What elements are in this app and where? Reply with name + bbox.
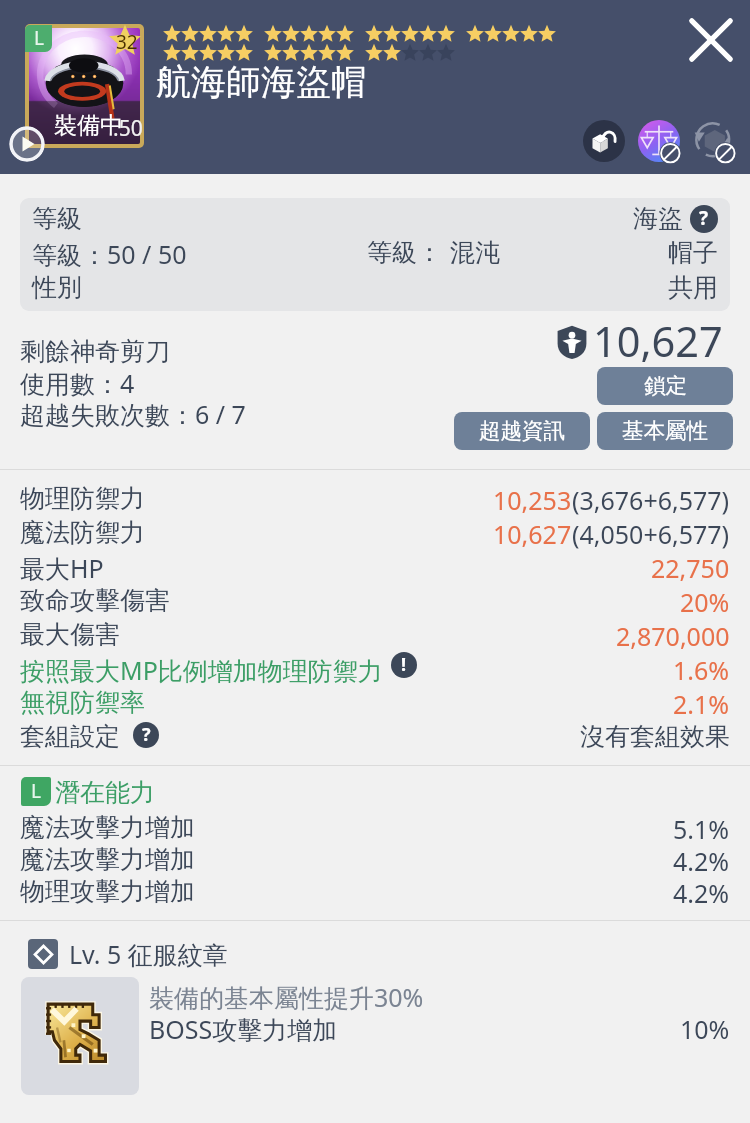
staticText: 基本屬性 <box>622 417 708 444</box>
staticText: 等級： <box>367 237 442 268</box>
staticText: 套組設定 <box>20 721 120 752</box>
staticText: .50 <box>113 114 143 143</box>
staticText: 潛在能力 <box>55 777 155 808</box>
button[interactable]: Info <box>391 652 417 678</box>
staticText: BOSS攻擊力增加 <box>149 1012 338 1046</box>
staticText: 按照最大MP比例增加物理防禦力 <box>20 653 383 687</box>
staticText: L <box>31 778 41 804</box>
staticText: Lv. 5 征服紋章 <box>69 937 228 971</box>
staticText: 10,253 <box>493 483 572 517</box>
staticText: 物理防禦力 <box>20 483 145 514</box>
staticText: 性別 <box>32 272 82 303</box>
staticText: 5.1% <box>673 812 730 846</box>
staticText: 等級 <box>32 203 82 234</box>
staticText: 20% <box>680 585 730 619</box>
staticText: 鎖定 <box>644 372 687 399</box>
staticText: 致命攻擊傷害 <box>20 585 170 616</box>
button[interactable]: Close <box>680 9 742 71</box>
staticText: 魔法攻擊力增加 <box>20 812 195 843</box>
staticText: 最大HP <box>20 551 104 585</box>
staticText: 超越失敗次數：6 / 7 <box>20 397 246 431</box>
staticText: 4.2% <box>673 876 730 910</box>
staticText: 物理攻擊力增加 <box>20 876 195 907</box>
staticText: 混沌 <box>450 237 500 268</box>
staticText: 帽子 <box>668 237 718 268</box>
button[interactable]: Exchange restricted <box>693 120 735 162</box>
button[interactable]: 基本屬性 <box>597 412 733 450</box>
staticText: 32 <box>116 29 138 55</box>
staticText: ? <box>699 205 709 231</box>
staticText: 剩餘神奇剪刀 <box>20 336 170 367</box>
staticText: 魔法防禦力 <box>20 517 145 548</box>
staticText: 沒有套組效果 <box>580 721 730 752</box>
staticText: 超越資訊 <box>479 417 565 444</box>
staticText: 航海師海盜帽 <box>156 60 366 104</box>
staticText: 裝備中 <box>54 111 123 140</box>
staticText: 22,750 <box>651 551 730 585</box>
staticText: 海盜 <box>633 203 683 234</box>
staticText: 使用數：4 <box>20 366 135 400</box>
staticText: 10,627 <box>593 313 723 370</box>
staticText: ! <box>401 652 407 677</box>
staticText: (4,050+6,577) <box>572 517 730 551</box>
staticText: 最大傷害 <box>20 619 120 650</box>
staticText: 10% <box>680 1012 730 1046</box>
button[interactable]: Preview <box>9 126 45 162</box>
staticText: 2,870,000 <box>616 619 730 653</box>
button[interactable]: 鎖定 <box>597 367 733 405</box>
staticText: ? <box>142 722 151 747</box>
staticText: 無視防禦率 <box>20 687 145 718</box>
button[interactable]: Move to storage <box>583 120 625 162</box>
staticText: 2.1% <box>673 687 730 721</box>
staticText: 10,627 <box>493 517 572 551</box>
staticText: 魔法攻擊力增加 <box>20 844 195 875</box>
staticText: 等級：50 / 50 <box>32 237 187 271</box>
staticText: L <box>34 25 44 51</box>
staticText: 4.2% <box>673 844 730 878</box>
button[interactable]: Set info <box>133 722 159 748</box>
button[interactable]: Emblem <box>21 977 139 1095</box>
button[interactable]: 超越資訊 <box>454 412 590 450</box>
staticText: (3,676+6,577) <box>572 483 730 517</box>
button[interactable]: Trade restricted <box>638 120 680 162</box>
staticText: 裝備的基本屬性提升30% <box>149 980 424 1014</box>
staticText: 1.6% <box>673 653 730 687</box>
staticText: 共用 <box>668 272 718 303</box>
